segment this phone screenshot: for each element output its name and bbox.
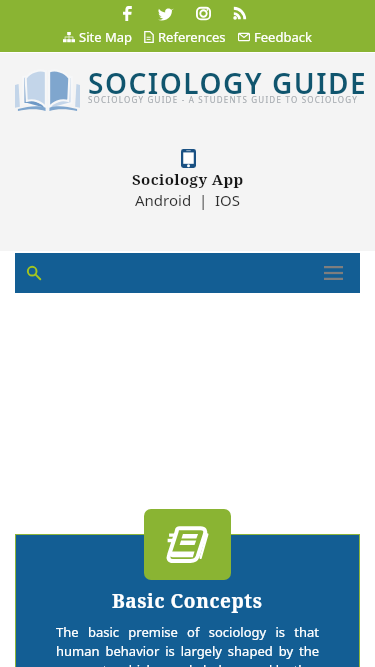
button[interactable]: Instagram bbox=[192, 4, 214, 22]
staticText: The basic premise of sociology is that h… bbox=[56, 623, 319, 667]
button[interactable]: Site Map bbox=[63, 28, 132, 46]
button[interactable]: Twitter bbox=[155, 4, 177, 22]
staticText: Basic Concepts bbox=[112, 588, 263, 614]
staticText: SOCIOLOGY GUIDE bbox=[88, 64, 368, 102]
button[interactable]: Search bbox=[19, 258, 49, 288]
button[interactable]: References bbox=[144, 28, 226, 46]
staticText: Android | IOS bbox=[135, 190, 241, 210]
staticText: Sociology App bbox=[132, 169, 244, 189]
button[interactable] bbox=[144, 509, 231, 580]
staticText: References bbox=[158, 28, 226, 46]
staticText: SOCIOLOGY GUIDE - A STUDENTS GUIDE TO SO… bbox=[88, 94, 358, 105]
button[interactable]: Facebook bbox=[116, 4, 138, 22]
button[interactable]: RSS Feed bbox=[229, 4, 251, 22]
staticText: Site Map bbox=[79, 28, 132, 46]
button[interactable]: Menu bbox=[318, 258, 348, 288]
staticText: Feedback bbox=[254, 28, 312, 46]
button[interactable]: Feedback bbox=[238, 28, 312, 46]
